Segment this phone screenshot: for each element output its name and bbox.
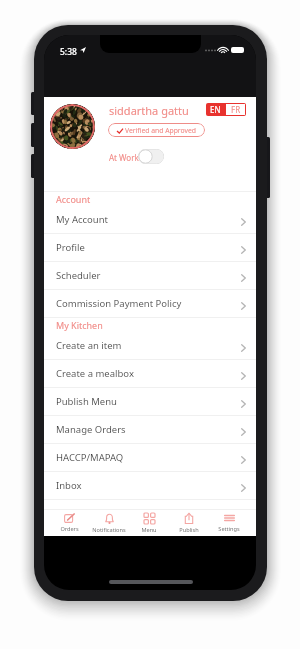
button[interactable]: Orders	[50, 510, 89, 536]
staticText: siddartha gattu	[109, 103, 189, 118]
other: Notifications	[105, 513, 114, 524]
staticText: EN	[210, 104, 221, 115]
staticText: My Kitchen	[56, 319, 103, 331]
button[interactable]: Create an item	[44, 332, 256, 360]
staticText: Manage Orders	[56, 423, 126, 436]
staticText: My Account	[56, 213, 109, 226]
staticText: Orders	[60, 525, 79, 533]
staticText: Commission Payment Policy	[56, 297, 182, 310]
staticText: Publish	[179, 526, 199, 534]
button[interactable]: HACCP/MAPAQ	[44, 444, 256, 472]
staticText: Verified and Approved	[125, 126, 196, 135]
button[interactable]: My Account	[44, 206, 256, 234]
staticText: FR	[231, 104, 241, 115]
button[interactable]: Publish Menu	[44, 388, 256, 416]
button[interactable]: Menu	[129, 510, 169, 536]
staticText: Create an item	[56, 339, 122, 352]
button[interactable]: Manage Orders	[44, 416, 256, 444]
button[interactable]: Notifications	[89, 510, 129, 536]
button[interactable]: Create a mealbox	[44, 360, 256, 388]
staticText: Scheduler	[56, 269, 101, 282]
button[interactable]: FR	[225, 103, 246, 116]
staticText: Settings	[218, 525, 240, 533]
button[interactable]: Scheduler	[44, 262, 256, 290]
button[interactable]: Profile photo	[50, 104, 95, 149]
staticText: Account	[56, 193, 91, 205]
staticText: Menu	[141, 526, 157, 534]
button[interactable]: At Work toggle	[138, 149, 164, 164]
other: Orders	[64, 513, 75, 523]
button[interactable]: EN	[206, 103, 225, 116]
staticText: Notifications	[92, 526, 126, 534]
staticText: At Work	[109, 152, 139, 163]
other: Menu	[144, 513, 155, 524]
button[interactable]: Commission Payment Policy	[44, 290, 256, 318]
button[interactable]: Profile	[44, 234, 256, 262]
other: Publish	[184, 513, 194, 524]
staticText: HACCP/MAPAQ	[56, 451, 124, 464]
staticText: 5:38	[60, 46, 77, 58]
other: Settings	[224, 513, 235, 523]
staticText: Profile	[56, 241, 85, 254]
staticText: Inbox	[56, 479, 82, 492]
button[interactable]: Inbox	[44, 472, 256, 500]
button[interactable]: Publish	[169, 510, 209, 536]
staticText: Create a mealbox	[56, 367, 134, 380]
staticText: Publish Menu	[56, 395, 117, 408]
button[interactable]: Settings	[209, 510, 249, 536]
button[interactable]: Verified and Approved	[108, 123, 205, 137]
